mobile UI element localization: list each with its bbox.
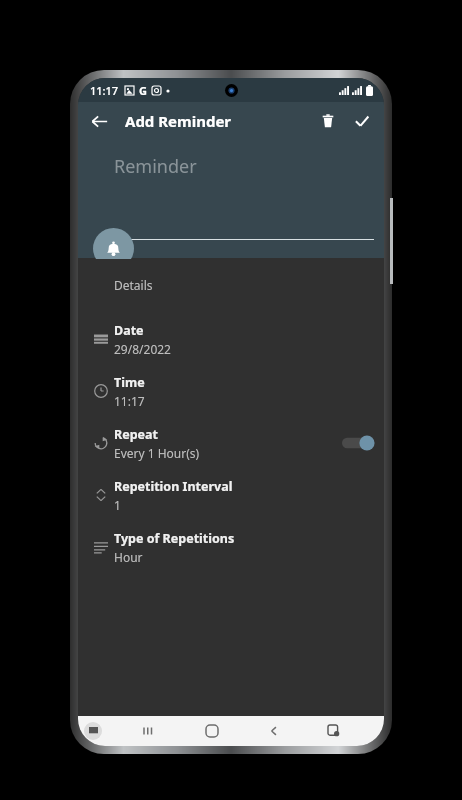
button[interactable]: Delete [312,105,344,137]
staticText: 1 [114,497,121,513]
button[interactable]: Back [254,717,294,745]
staticText: Details [114,277,153,293]
staticText: Reminder [114,154,197,179]
button[interactable]: Recents [129,717,169,745]
staticText: Hour [114,549,143,565]
button[interactable]: Back [82,104,116,138]
button[interactable]: Repeat toggle [342,433,374,453]
button[interactable]: Repetition Interval [78,469,384,521]
staticText: 29/8/2022 [114,341,171,357]
staticText: G [139,83,147,98]
staticText: 11:17 [114,393,145,409]
button[interactable]: Reminder [78,140,384,258]
button[interactable]: Reminder type [93,228,134,269]
button[interactable]: Repeat [78,417,384,469]
staticText: 11:17 [90,83,119,98]
staticText: Repetition Interval [114,478,233,495]
button[interactable]: Time [78,365,384,417]
staticText: Type of Repetitions [114,530,235,547]
button[interactable]: Home [192,717,232,745]
staticText: Date [114,322,144,339]
button[interactable]: Save [346,105,378,137]
button[interactable]: Assistant [317,717,351,745]
staticText: Every 1 Hour(s) [114,445,200,461]
staticText: Repeat [114,426,158,443]
button[interactable]: Keyboard [84,722,102,740]
staticText: Add Reminder [125,111,232,131]
staticText: Time [114,374,145,391]
button[interactable]: Date [78,313,384,365]
button[interactable]: Type of Repetitions [78,521,384,573]
